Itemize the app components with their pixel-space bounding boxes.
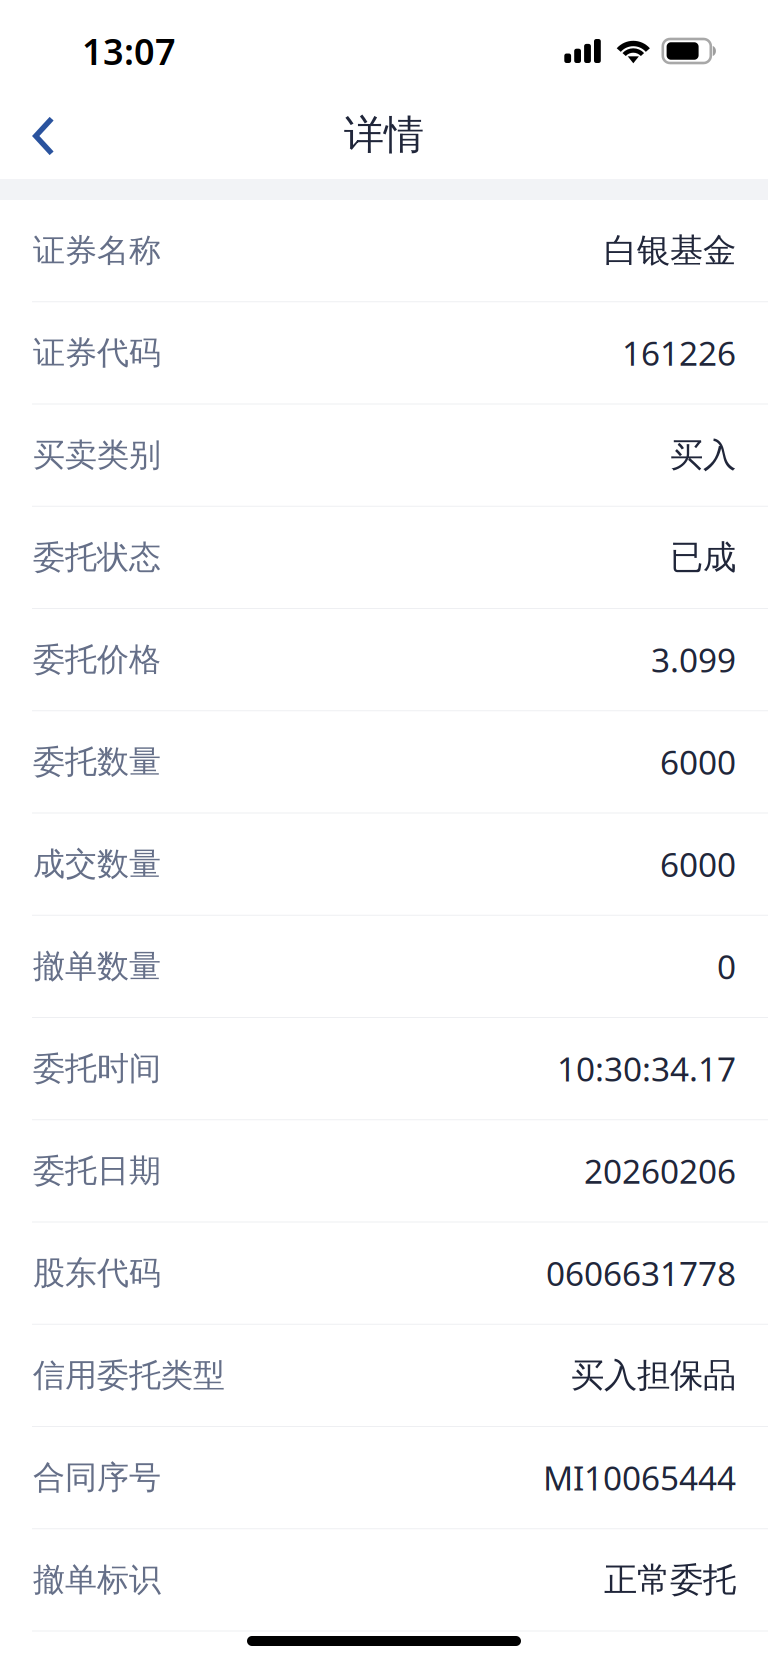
staticText: 买入 — [670, 435, 736, 476]
button[interactable]: 撤单标识 — [0, 1529, 768, 1631]
staticText: MI10065444 — [543, 1455, 736, 1500]
staticText: 委托状态 — [33, 538, 161, 577]
button[interactable]: 委托价格 — [0, 609, 768, 711]
staticText: 已成 — [670, 537, 736, 578]
staticText: 撤单标识 — [33, 1560, 161, 1599]
button[interactable]: 合同序号 — [0, 1427, 768, 1529]
staticText: 白银基金 — [604, 230, 736, 271]
staticText: 撤单数量 — [33, 947, 161, 986]
staticText: 合同序号 — [33, 1458, 161, 1497]
button[interactable]: 委托日期 — [0, 1120, 768, 1222]
staticText: 0 — [717, 944, 736, 988]
staticText: 委托价格 — [33, 640, 161, 679]
staticText: 委托数量 — [33, 742, 161, 781]
staticText: 10:30:34.17 — [557, 1046, 736, 1091]
staticText: 详情 — [344, 110, 424, 159]
staticText: 6000 — [660, 842, 736, 886]
staticText: 委托日期 — [33, 1151, 161, 1190]
staticText: 0606631778 — [546, 1251, 736, 1295]
staticText: 161226 — [622, 331, 736, 375]
staticText: 信用委托类型 — [33, 1356, 225, 1395]
button[interactable]: 委托状态 — [0, 507, 768, 609]
staticText: 委托时间 — [33, 1049, 161, 1088]
button[interactable]: 撤单数量 — [0, 916, 768, 1018]
button[interactable]: 委托数量 — [0, 711, 768, 813]
button[interactable]: Back — [0, 103, 104, 169]
staticText: 成交数量 — [33, 844, 161, 884]
staticText: 证券代码 — [33, 333, 161, 372]
button[interactable]: 证券名称 — [0, 200, 768, 302]
staticText: 20260206 — [584, 1149, 736, 1193]
button[interactable]: 委托时间 — [0, 1018, 768, 1120]
staticText: 股东代码 — [33, 1253, 161, 1293]
staticText: 买入担保品 — [571, 1355, 736, 1396]
button[interactable]: 成交数量 — [0, 813, 768, 916]
button[interactable]: 股东代码 — [0, 1222, 768, 1325]
button[interactable]: 证券代码 — [0, 302, 768, 404]
button[interactable]: 买卖类别 — [0, 404, 768, 507]
staticText: 3.099 — [651, 637, 736, 682]
staticText: 正常委托 — [604, 1559, 736, 1600]
button[interactable]: 信用委托类型 — [0, 1325, 768, 1427]
staticText: 13:07 — [82, 27, 176, 75]
staticText: 买卖类别 — [33, 435, 161, 475]
staticText: 证券名称 — [33, 231, 161, 270]
staticText: 6000 — [660, 740, 736, 784]
